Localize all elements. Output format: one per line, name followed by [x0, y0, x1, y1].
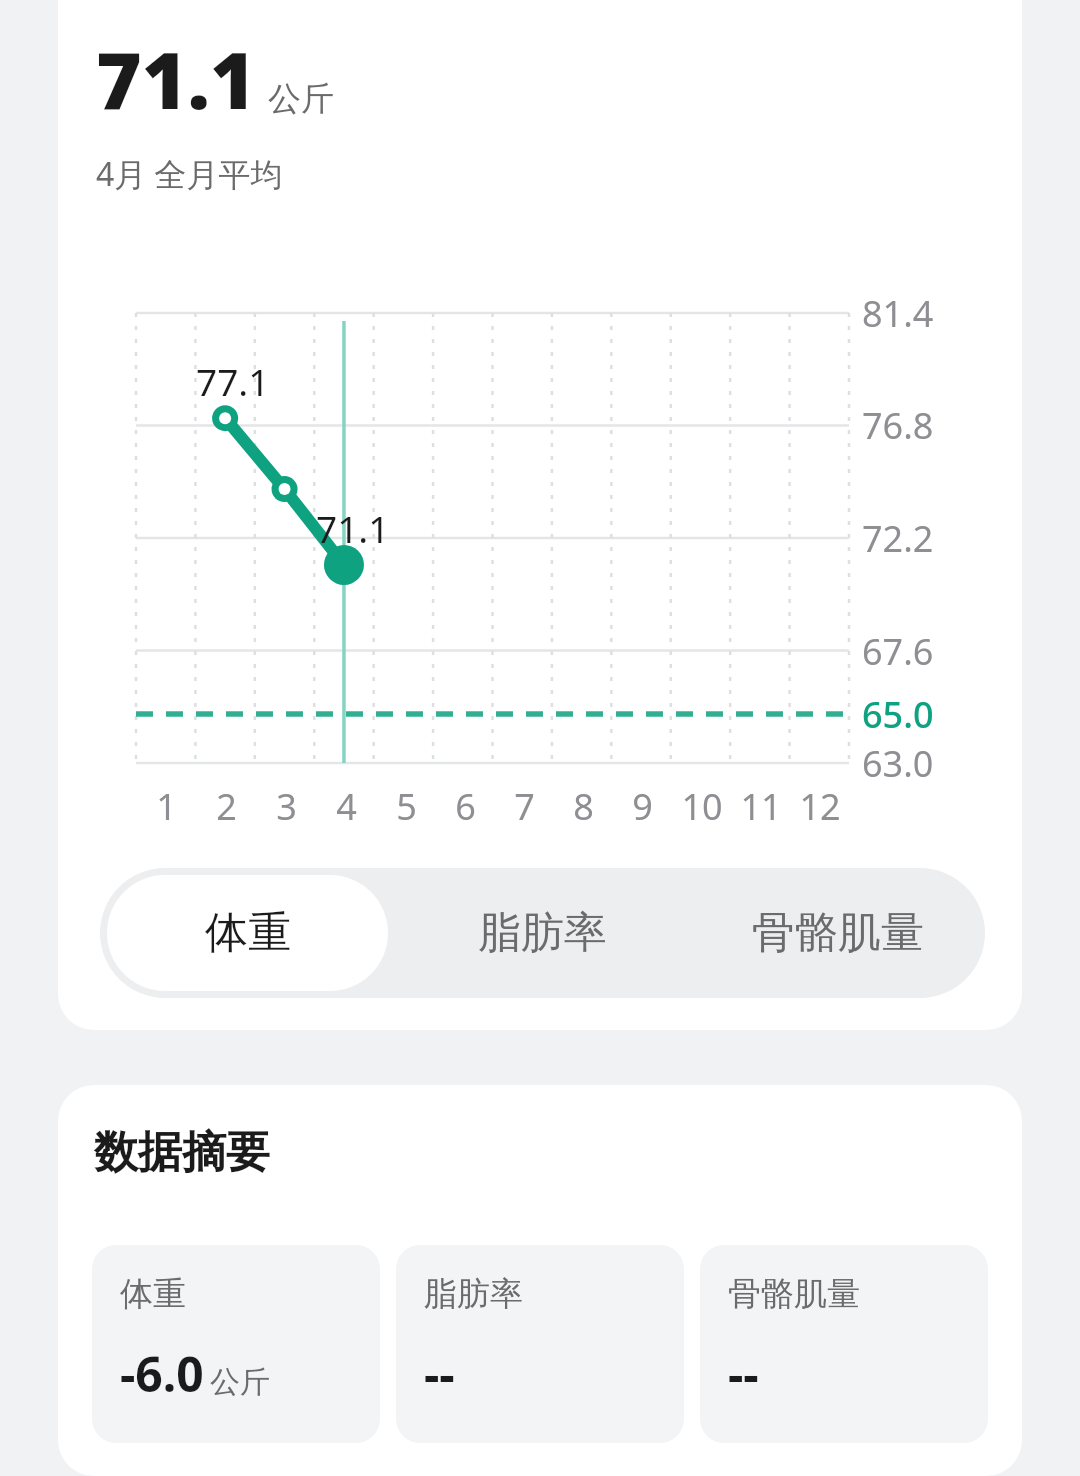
staticText: 公斤	[268, 78, 334, 120]
staticText: 67.6	[862, 627, 934, 676]
staticText: 4	[336, 782, 357, 831]
staticText: --	[728, 1341, 759, 1406]
staticText: 11	[740, 782, 782, 831]
staticText: 3	[276, 782, 297, 831]
staticText: 体重	[205, 906, 291, 960]
staticText: 6	[455, 782, 476, 831]
staticText: 体重	[120, 1273, 186, 1315]
staticText: 77.1	[196, 356, 270, 406]
staticText: 数据摘要	[94, 1125, 270, 1180]
staticText: 脂肪率	[478, 906, 607, 960]
staticText: 1	[156, 782, 177, 831]
staticText: 4月 全月平均	[96, 152, 283, 196]
button[interactable]: 脂肪率	[395, 868, 690, 998]
staticText: 12	[799, 782, 841, 831]
other: Weight trend chart	[58, 0, 1022, 1030]
button[interactable]: 体重	[107, 875, 388, 991]
button[interactable]: 脂肪率	[396, 1245, 684, 1443]
button[interactable]: 体重	[92, 1245, 380, 1443]
staticText: 10	[681, 782, 723, 831]
staticText: 65.0	[862, 690, 934, 739]
staticText: 76.8	[862, 401, 934, 450]
staticText: 2	[216, 782, 237, 831]
staticText: 71.1	[316, 503, 390, 553]
staticText: 骨骼肌量	[728, 1273, 860, 1315]
staticText: 81.4	[862, 289, 934, 338]
button[interactable]: 骨骼肌量	[690, 868, 985, 998]
staticText: 63.0	[862, 739, 934, 788]
staticText: 脂肪率	[424, 1273, 523, 1315]
staticText: 7	[514, 782, 535, 831]
staticText: 9	[632, 782, 653, 831]
staticText: --	[424, 1341, 455, 1406]
staticText: 71.1	[96, 26, 256, 132]
staticText: 5	[396, 782, 417, 831]
staticText: 72.2	[862, 514, 934, 563]
button[interactable]: 骨骼肌量	[700, 1245, 988, 1443]
staticText: 骨骼肌量	[752, 906, 924, 960]
staticText: 公斤	[210, 1363, 270, 1401]
staticText: 8	[573, 782, 594, 831]
staticText: -6.0	[120, 1341, 204, 1406]
